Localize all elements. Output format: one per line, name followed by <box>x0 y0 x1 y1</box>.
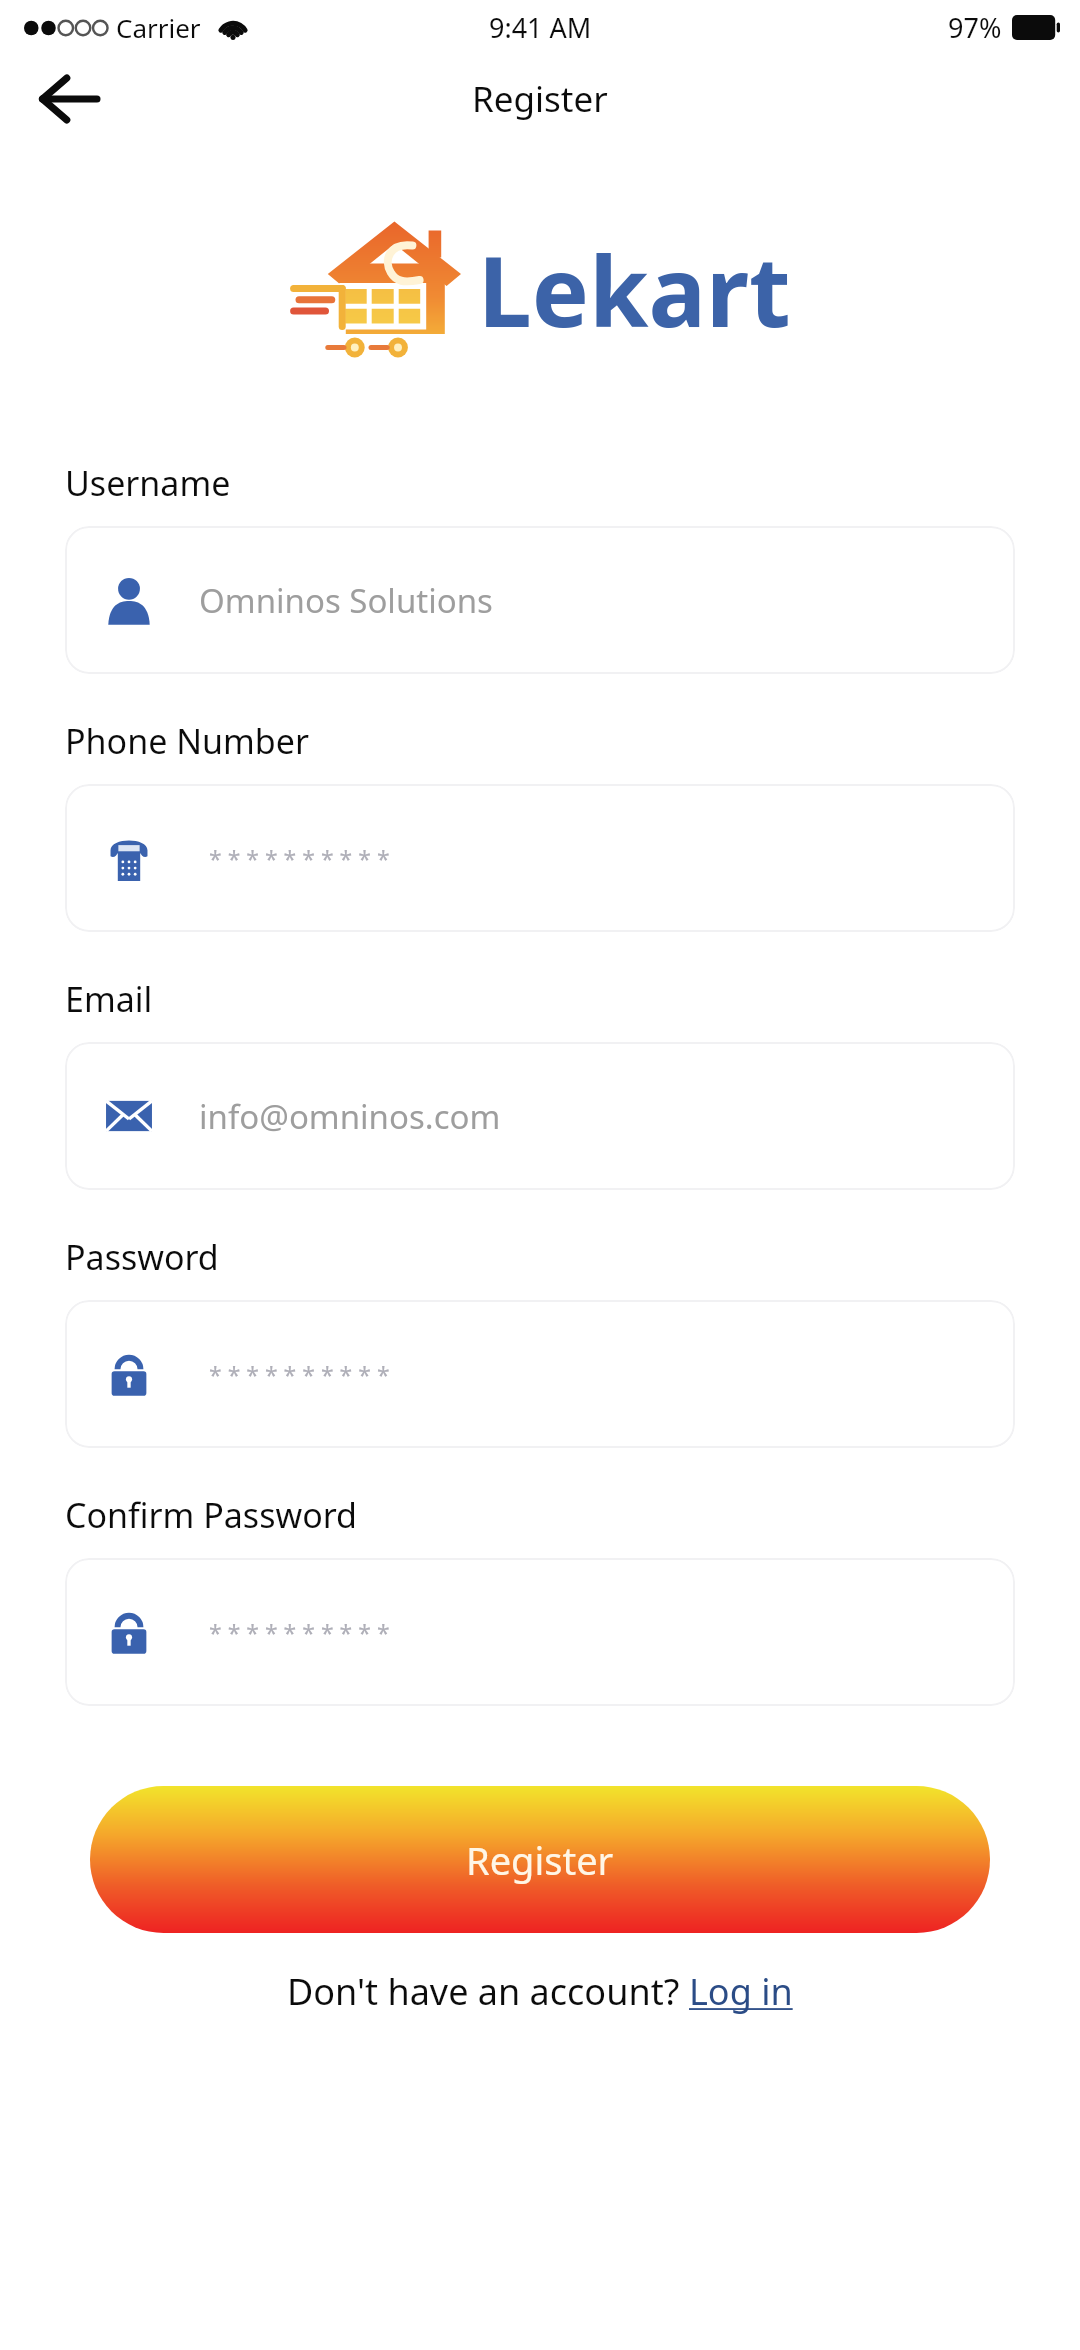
button[interactable]: * * * * * * * * * * <box>65 784 1015 932</box>
button[interactable]: * * * * * * * * * * <box>65 1300 1015 1448</box>
staticText: Register <box>472 75 608 123</box>
staticText: Carrier <box>116 10 201 45</box>
staticText: info@omninos.com <box>199 1094 501 1139</box>
staticText: * * * * * * * * * * <box>209 843 390 874</box>
staticText: Phone Number <box>65 718 309 764</box>
staticText: Omninos Solutions <box>199 578 493 623</box>
button[interactable]: * * * * * * * * * * <box>65 1558 1015 1706</box>
staticText: Email <box>65 976 153 1022</box>
staticText: Register <box>466 1834 614 1886</box>
staticText: Don't have an account? <box>287 1967 689 2016</box>
staticText: Lekart <box>478 224 791 355</box>
staticText: 97% <box>948 9 1002 46</box>
button[interactable]: Back <box>20 54 116 144</box>
button[interactable]: Omninos Solutions <box>65 526 1015 674</box>
staticText: * * * * * * * * * * <box>209 1359 390 1390</box>
staticText: Log in <box>689 1967 793 2016</box>
button[interactable]: Register <box>90 1786 990 1933</box>
staticText: Confirm Password <box>65 1492 357 1538</box>
staticText: * * * * * * * * * * <box>209 1617 390 1648</box>
staticText: Password <box>65 1234 219 1280</box>
staticText: 9:41 AM <box>489 9 592 46</box>
button[interactable]: info@omninos.com <box>65 1042 1015 1190</box>
staticText: Username <box>65 460 231 506</box>
button[interactable]: Log in <box>689 1967 793 2016</box>
